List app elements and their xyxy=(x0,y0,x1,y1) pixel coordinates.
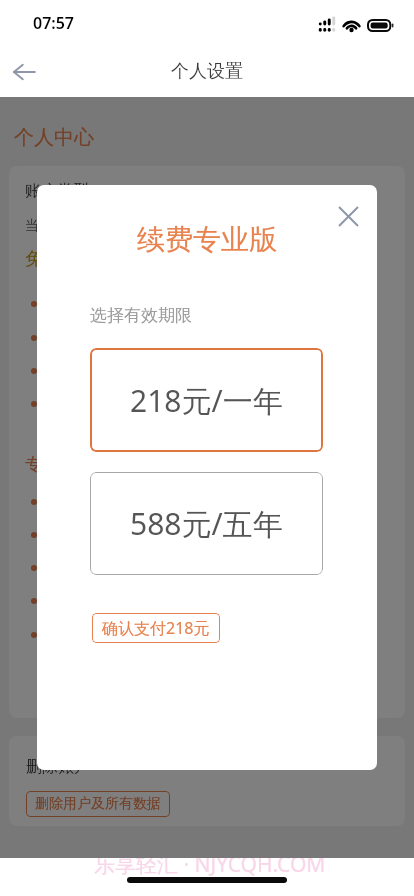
button[interactable]: 确认支付218元 xyxy=(92,613,220,643)
staticText: 无限记账条数 xyxy=(47,493,131,511)
staticText: 免费版功能 xyxy=(25,248,115,271)
button[interactable]: 218元/一年 xyxy=(90,348,323,452)
staticText: 218元/一年 xyxy=(130,380,283,421)
staticText: 删除用户及所有数据 xyxy=(35,795,161,813)
staticText: 个人设置 xyxy=(171,60,243,83)
staticText: 确认支付218元 xyxy=(102,617,210,639)
staticText: 基础统计图表 xyxy=(47,362,131,380)
staticText: 支持基础记账功能 xyxy=(47,295,159,313)
staticText: 高级统计分析 xyxy=(47,526,131,544)
button[interactable]: Close xyxy=(326,194,370,238)
staticText: 专业版功能 xyxy=(25,454,110,475)
staticText: 07:57 xyxy=(33,12,75,34)
staticText: 个人中心 xyxy=(14,125,94,150)
staticText: 导出 Excel 报表 xyxy=(47,625,144,644)
staticText: 续费专业版 xyxy=(37,222,377,257)
staticText: 本地数据备份 xyxy=(47,395,131,413)
button[interactable]: Back xyxy=(0,48,48,96)
button[interactable]: 588元/五年 xyxy=(90,472,323,575)
staticText: 乐享轻汇 · NJYCQH.COM xyxy=(94,850,326,879)
staticText: 账户类型 xyxy=(25,181,89,201)
staticText: 删除账户 xyxy=(26,757,90,777)
staticText: 当前版本：免费版 xyxy=(25,217,137,235)
staticText: 选择有效期限 xyxy=(90,305,192,326)
staticText: 588元/五年 xyxy=(130,503,283,544)
staticText: 云端数据同步 xyxy=(47,559,131,577)
button[interactable]: 删除用户及所有数据 xyxy=(26,791,170,817)
